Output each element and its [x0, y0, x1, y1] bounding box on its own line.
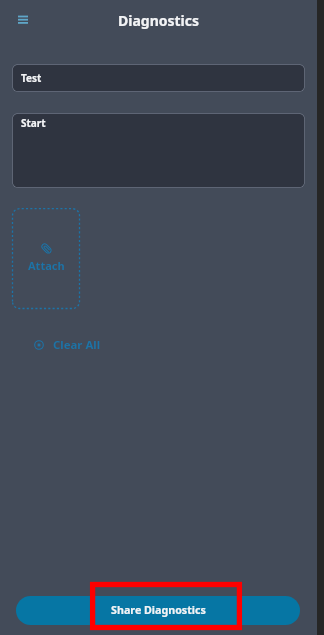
- button[interactable]: Start: [12, 113, 305, 188]
- button[interactable]: Clear All: [34, 337, 101, 353]
- button[interactable]: Open navigation menu: [11, 8, 35, 32]
- button[interactable]: Test: [12, 64, 305, 92]
- staticText: Test: [21, 71, 42, 85]
- staticText: Diagnostics: [118, 11, 200, 30]
- staticText: Clear All: [53, 337, 101, 353]
- staticText: Start: [21, 116, 46, 130]
- button[interactable]: Share Diagnostics: [16, 596, 300, 625]
- staticText: Attach: [28, 258, 65, 273]
- button[interactable]: Attach: [11, 208, 81, 310]
- staticText: Share Diagnostics: [111, 603, 206, 618]
